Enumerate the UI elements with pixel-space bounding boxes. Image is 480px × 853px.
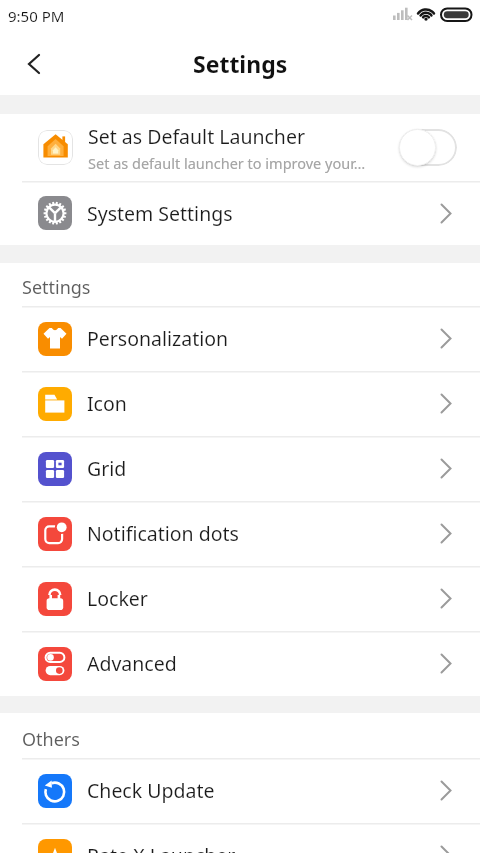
staticText: Locker bbox=[87, 585, 440, 612]
staticText: Settings bbox=[22, 275, 91, 300]
button[interactable]: Advanced bbox=[0, 631, 480, 696]
button[interactable]: Check Update bbox=[0, 758, 480, 823]
staticText: Advanced bbox=[87, 650, 440, 677]
staticText: Notification dots bbox=[87, 520, 440, 547]
staticText: System Settings bbox=[87, 200, 440, 227]
button[interactable]: Set as Default Launcher bbox=[0, 114, 480, 181]
button[interactable] bbox=[399, 129, 457, 166]
button[interactable]: System Settings bbox=[0, 181, 480, 245]
staticText: Personalization bbox=[87, 325, 440, 352]
button[interactable]: Rate X Launcher bbox=[0, 823, 480, 853]
button[interactable]: Icon bbox=[0, 371, 480, 436]
button[interactable]: Locker bbox=[0, 566, 480, 631]
staticText: Set as default launcher to improve your… bbox=[88, 153, 366, 173]
staticText: Icon bbox=[87, 390, 440, 417]
staticText: Rate X Launcher bbox=[87, 842, 440, 853]
button[interactable]: Grid bbox=[0, 436, 480, 501]
staticText: Others bbox=[22, 727, 80, 752]
button[interactable]: Personalization bbox=[0, 306, 480, 371]
button[interactable] bbox=[16, 46, 52, 82]
staticText: Set as Default Launcher bbox=[88, 123, 305, 150]
staticText: Check Update bbox=[87, 777, 440, 804]
button[interactable]: Notification dots bbox=[0, 501, 480, 566]
staticText: 9:50 PM bbox=[8, 6, 65, 26]
staticText: Settings bbox=[193, 48, 288, 79]
staticText: Grid bbox=[87, 455, 440, 482]
